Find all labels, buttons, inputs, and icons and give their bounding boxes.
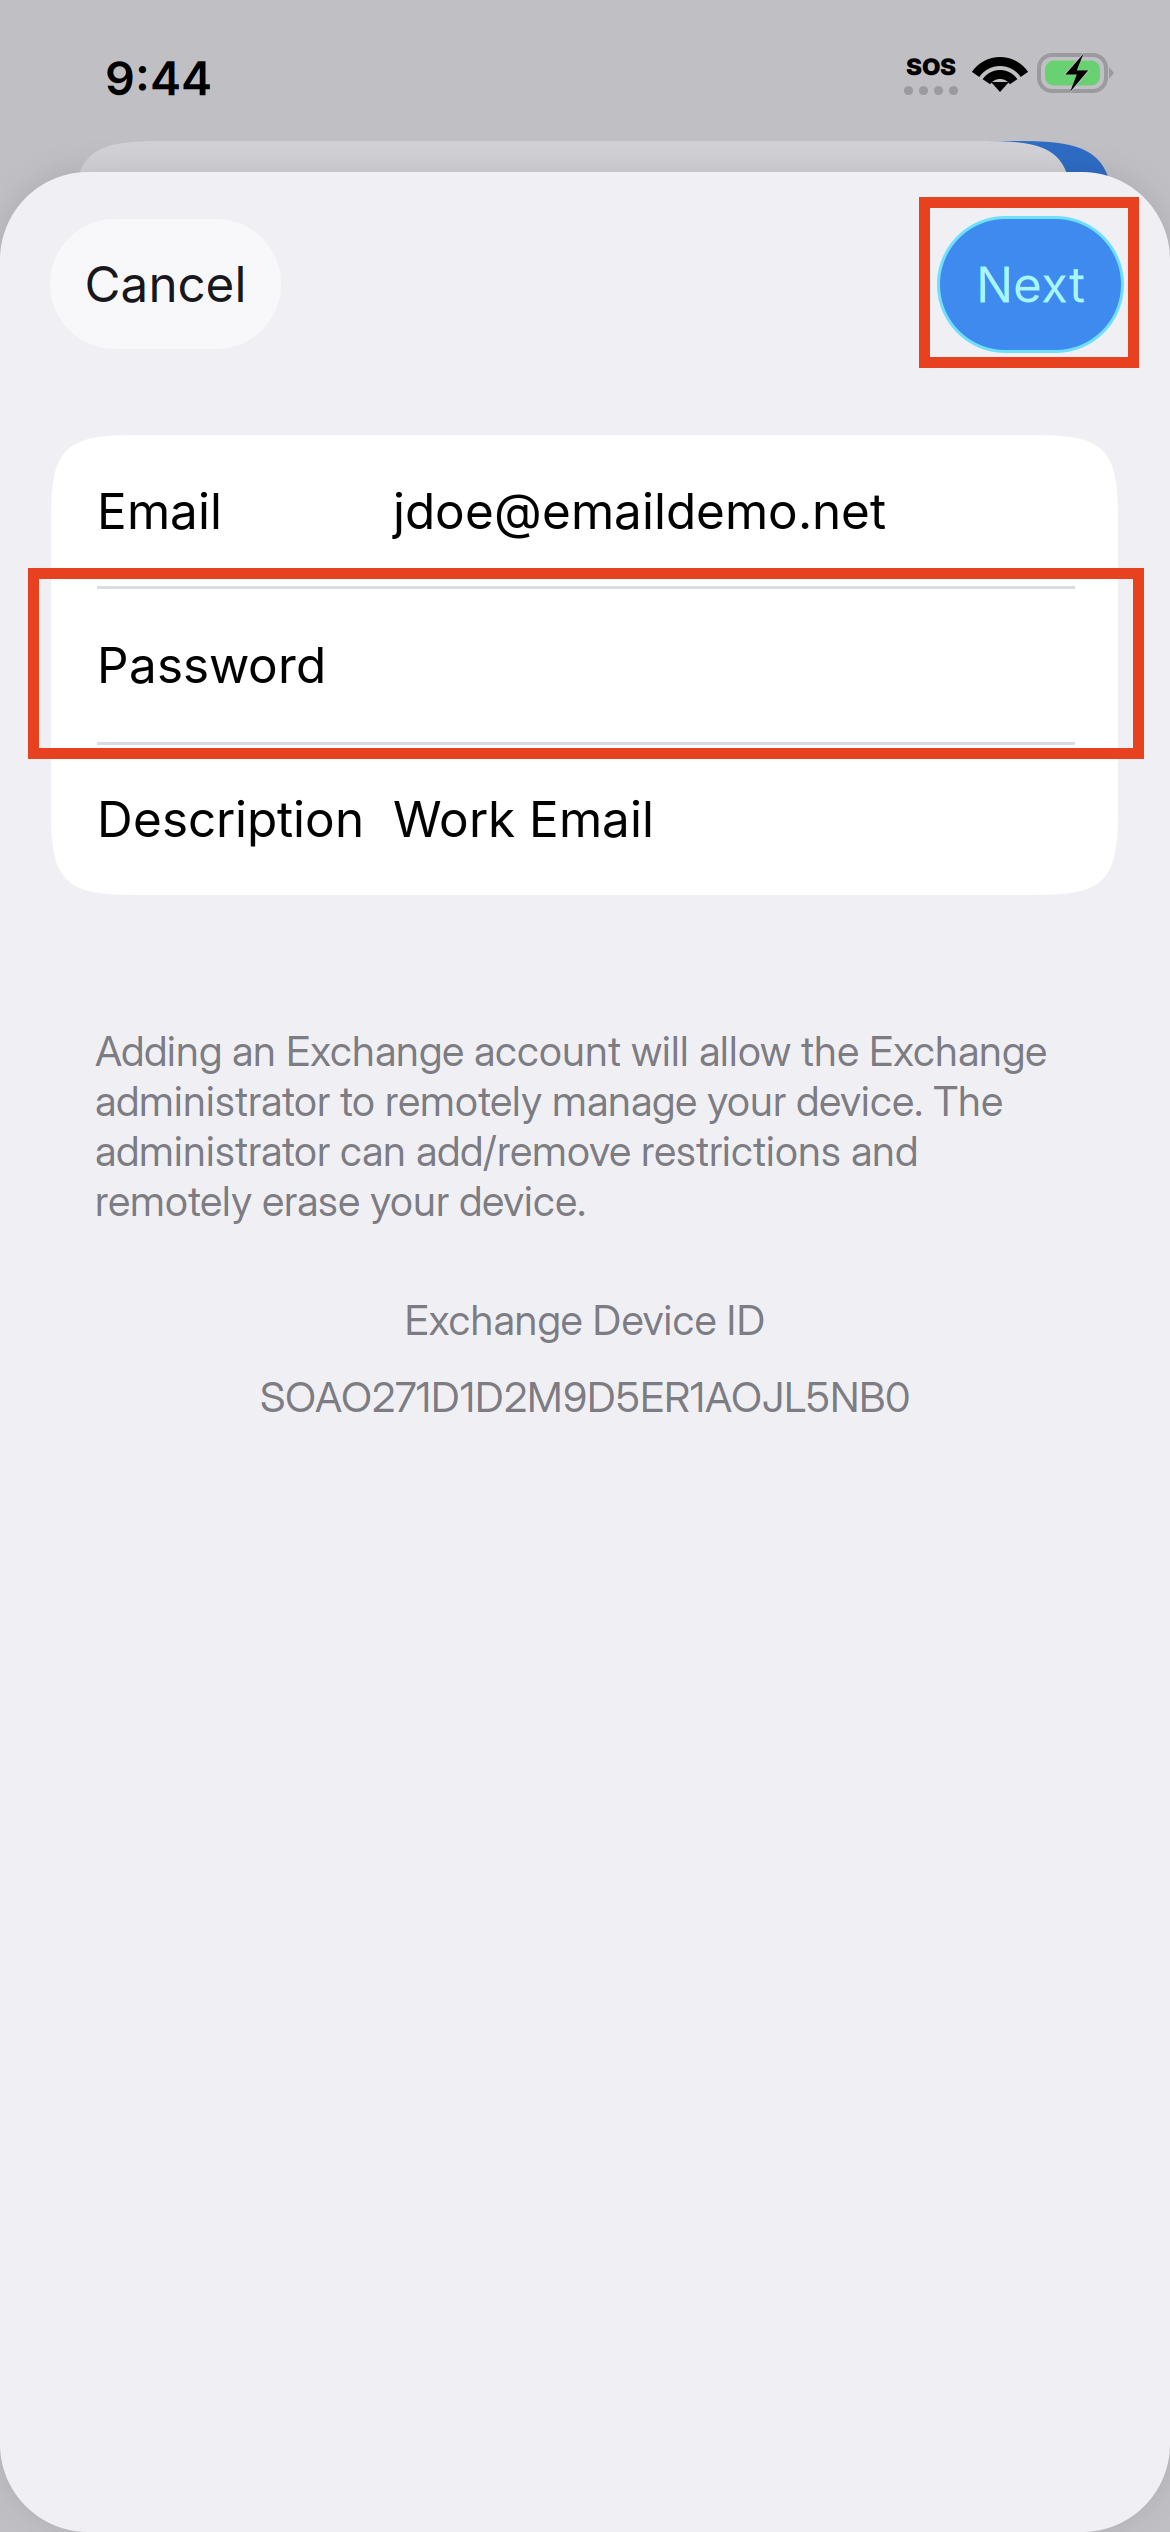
staticText: Work Email [393, 789, 654, 849]
button[interactable]: Next [937, 216, 1124, 353]
staticText: Description [97, 789, 364, 849]
button[interactable]: Cancel [50, 219, 281, 349]
staticText: SOS [906, 52, 956, 81]
staticText: Email [97, 481, 222, 541]
staticText: 9:44 [105, 50, 212, 106]
staticText: Password [97, 635, 326, 695]
staticText: SOAO271D1D2M9D5ER1AOJL5NB0 [260, 1372, 910, 1422]
button[interactable]: Password [51, 587, 1118, 743]
staticText: Adding an Exchange account will allow th… [95, 1026, 1047, 1226]
button[interactable]: Email [51, 435, 1118, 587]
staticText: Exchange Device ID [404, 1295, 765, 1345]
staticText: Next [976, 255, 1085, 314]
staticText: Cancel [84, 254, 246, 314]
button[interactable]: Description [51, 743, 1118, 895]
staticText: jdoe@emaildemo.net [393, 481, 886, 541]
